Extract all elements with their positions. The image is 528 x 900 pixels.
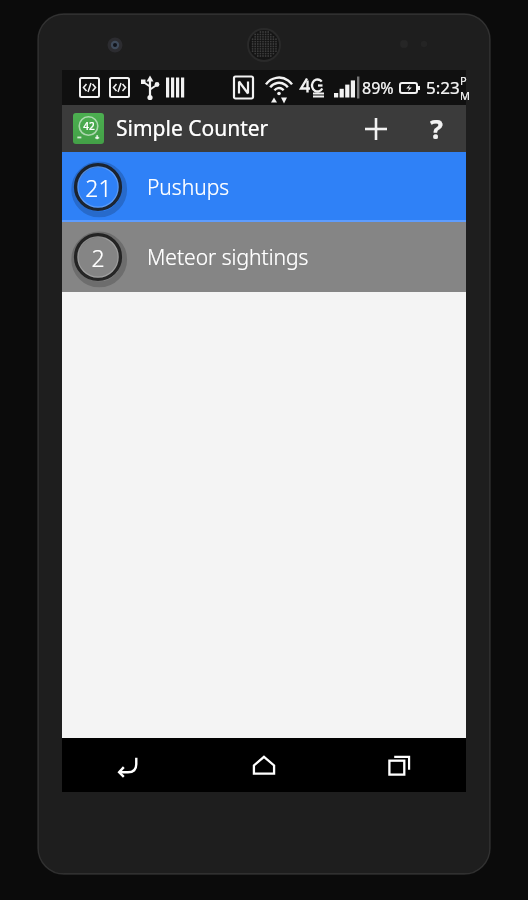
staticText: 42 [83,119,95,133]
button[interactable]: 21 [62,152,466,222]
staticText: 2 [91,242,105,273]
staticText: ? [430,110,443,147]
button[interactable]: Help [412,105,460,152]
button[interactable]: Add counter [352,105,400,152]
button[interactable]: Home [196,738,331,792]
button[interactable]: Back [62,738,196,792]
staticText: Simple Counter [116,114,269,143]
button[interactable]: Recent apps [331,738,466,792]
button[interactable]: 2 [62,222,466,292]
staticText: 89% [362,77,394,99]
staticText: 21 [85,172,112,203]
staticText: Pushups [147,173,230,202]
staticText: 5:23 [426,76,460,99]
staticText: Meteor sightings [147,243,309,272]
